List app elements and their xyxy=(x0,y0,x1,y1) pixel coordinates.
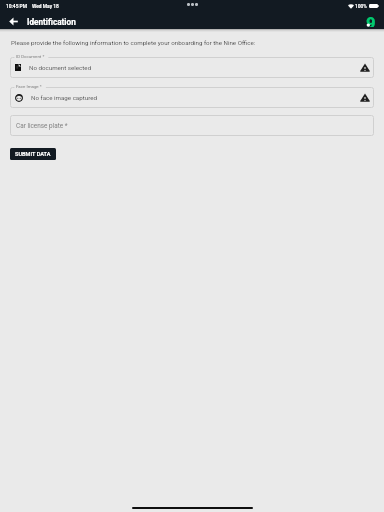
staticText: Please provide the following information… xyxy=(11,39,256,46)
button[interactable]: Nine Office xyxy=(364,14,377,27)
staticText: SUBMIT DATA xyxy=(15,151,51,158)
button[interactable]: Back xyxy=(7,15,20,28)
button[interactable]: Warning xyxy=(360,93,370,102)
staticText: No document selected xyxy=(29,64,92,71)
staticText: No face image captured xyxy=(31,94,97,101)
staticText: Identification xyxy=(27,17,76,27)
button[interactable]: SUBMIT DATA xyxy=(10,148,56,160)
staticText: 10:45 PM xyxy=(6,3,28,9)
staticText: 9 xyxy=(366,14,376,27)
staticText: Wed May 18 xyxy=(32,3,59,9)
staticText: 100% xyxy=(355,3,367,9)
staticText: Car license plate * xyxy=(16,122,68,130)
button[interactable]: Car license plate * xyxy=(10,115,374,136)
staticText: ID Document * xyxy=(16,54,45,59)
staticText: Face Image * xyxy=(16,84,42,89)
button[interactable]: Warning xyxy=(360,63,370,72)
